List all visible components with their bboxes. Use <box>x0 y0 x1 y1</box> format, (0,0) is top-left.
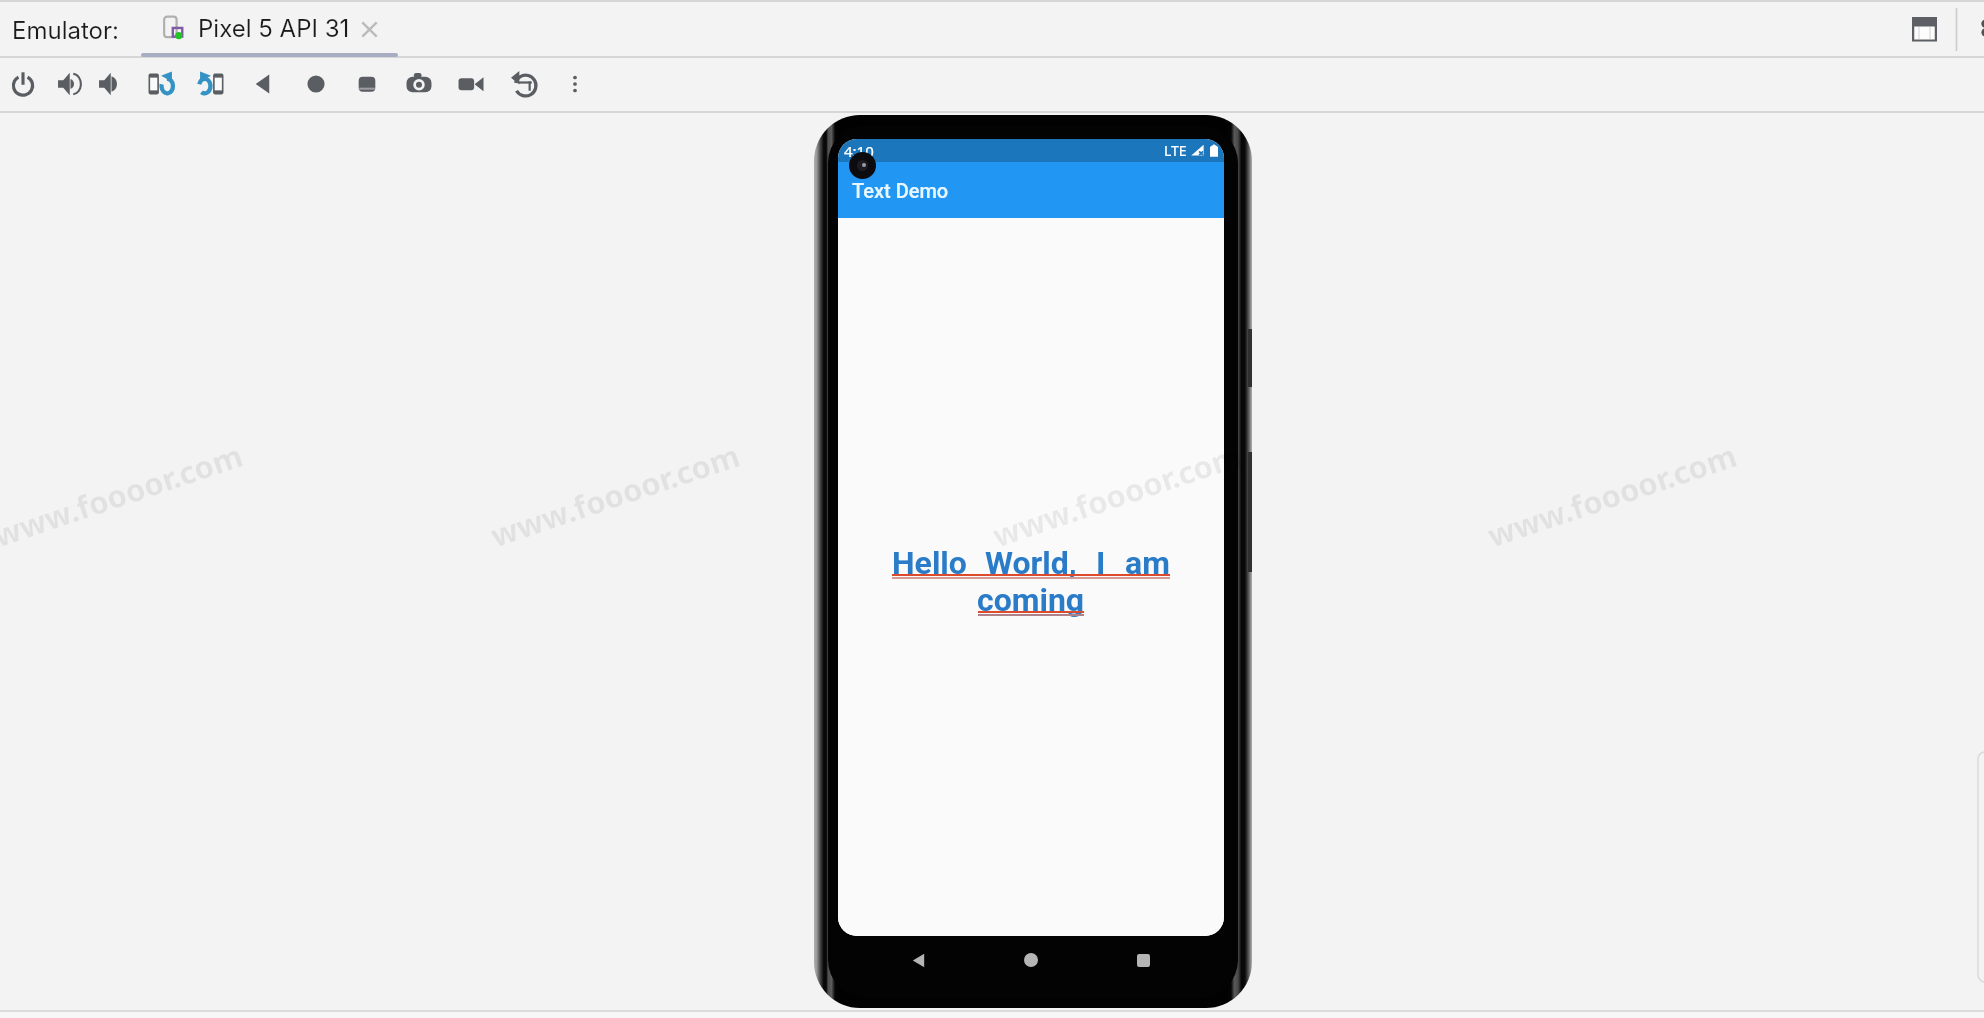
button[interactable]: Screenshot <box>399 64 439 104</box>
staticText: www.foooor.com <box>0 434 248 556</box>
staticText: 4:10 <box>844 141 874 161</box>
staticText: Emulator: <box>12 16 119 45</box>
staticText: LTE <box>1164 141 1187 160</box>
staticText: World, <box>985 544 1077 580</box>
button[interactable]: Volume down <box>91 64 131 104</box>
button[interactable]: Back <box>897 939 939 981</box>
staticText: www.foooor.com <box>987 434 1247 556</box>
staticText: www.foooor.com <box>1482 434 1742 556</box>
button[interactable]: Rotate right <box>191 64 231 104</box>
button[interactable]: Pixel 5 API 31 <box>140 0 400 57</box>
button[interactable]: More <box>555 64 595 104</box>
button[interactable]: Rotate left <box>141 64 181 104</box>
staticText: Hello <box>892 544 967 580</box>
staticText: www.foooor.com <box>485 434 745 556</box>
button[interactable]: Power <box>3 64 43 104</box>
staticText: I <box>1096 544 1106 580</box>
staticText: Text Demo <box>852 179 949 202</box>
button[interactable]: Home <box>1010 939 1052 981</box>
button[interactable]: Close tab <box>354 14 384 44</box>
button[interactable]: Rotate back <box>504 64 544 104</box>
staticText: Pixel 5 API 31 <box>198 14 350 43</box>
button[interactable]: Overview <box>347 64 387 104</box>
button[interactable]: Separate window <box>1904 9 1944 49</box>
button[interactable]: Volume up <box>50 64 90 104</box>
button[interactable]: Home <box>296 64 336 104</box>
button[interactable]: Back <box>243 64 283 104</box>
staticText: am <box>1125 544 1170 580</box>
button[interactable]: Recents <box>1122 939 1164 981</box>
staticText: coming <box>977 581 1085 619</box>
button[interactable]: Record screen <box>451 64 491 104</box>
